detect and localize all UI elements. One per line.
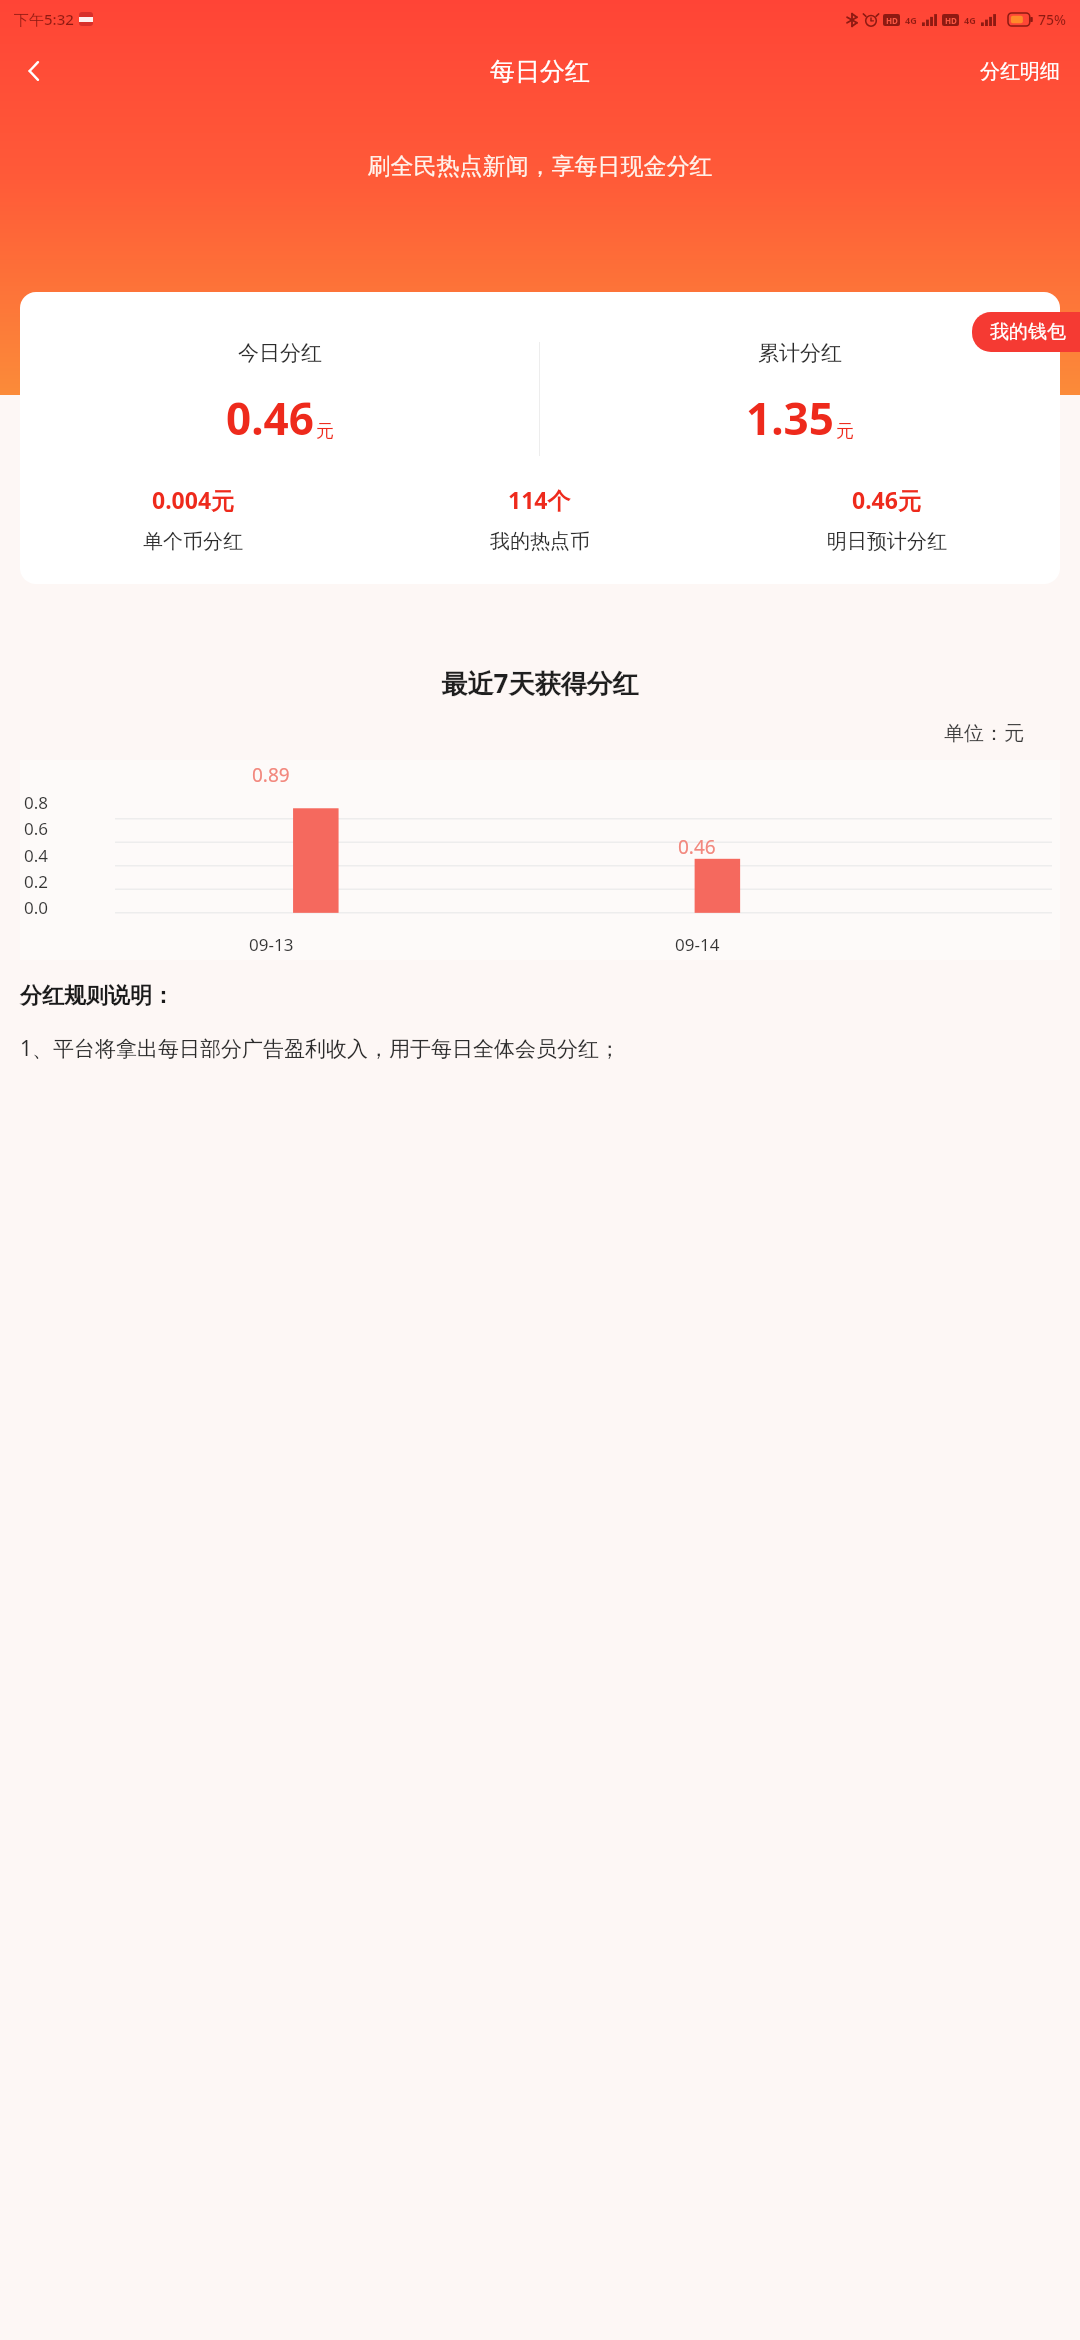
staticText: HD [886, 15, 898, 26]
staticText: 今日分红 [238, 340, 322, 366]
staticText: 单个币分红 [143, 529, 243, 554]
staticText: 我的钱包 [990, 320, 1066, 344]
staticText: 0.46 [678, 834, 716, 860]
staticText: 0.004元 [152, 484, 235, 515]
staticText: 0.8 [24, 791, 49, 814]
staticText: 下午5:32 [14, 9, 74, 29]
staticText: 0.6 [24, 817, 49, 840]
staticText: HD [945, 15, 957, 26]
staticText: 0.89 [252, 762, 290, 788]
staticText: 元 [316, 420, 334, 443]
staticText: 0.46 [226, 388, 314, 448]
staticText: 最近7天获得分红 [0, 665, 1080, 701]
staticText: 0.2 [24, 870, 49, 893]
button[interactable]: 0.46元 [713, 484, 1060, 554]
staticText: 分红明细 [980, 59, 1060, 84]
button[interactable]: 114个 [366, 484, 713, 554]
button[interactable]: 分红明细 [976, 51, 1064, 92]
staticText: 明日预计分红 [827, 529, 947, 554]
staticText: 114个 [508, 484, 571, 515]
staticText: 09-13 [249, 933, 294, 956]
button[interactable]: 今日分红 [20, 340, 539, 448]
button[interactable]: 累计分红 [540, 340, 1060, 448]
staticText: 1.35 [746, 388, 834, 448]
staticText: 0.46元 [852, 484, 921, 515]
staticText: 1、平台将拿出每日部分广告盈利收入，用于每日全体会员分红； [20, 1034, 621, 1063]
staticText: 每日分红 [490, 56, 590, 87]
staticText: 元 [836, 420, 854, 443]
button[interactable]: 我的钱包 [972, 312, 1080, 352]
button[interactable]: 返回 [8, 45, 60, 97]
staticText: 我的热点币 [490, 529, 590, 554]
staticText: 累计分红 [758, 340, 842, 366]
staticText: 75% [1038, 10, 1066, 29]
staticText: 0.0 [24, 896, 49, 919]
button[interactable]: 0.004元 [20, 484, 366, 554]
staticText: 刷全民热点新闻，享每日现金分红 [0, 152, 1080, 181]
staticText: 4G [964, 14, 976, 26]
staticText: 09-14 [675, 933, 720, 956]
staticText: 分红规则说明： [20, 982, 174, 1010]
staticText: 0.4 [24, 844, 49, 867]
staticText: 单位：元 [0, 721, 1024, 746]
staticText: 4G [905, 14, 917, 26]
